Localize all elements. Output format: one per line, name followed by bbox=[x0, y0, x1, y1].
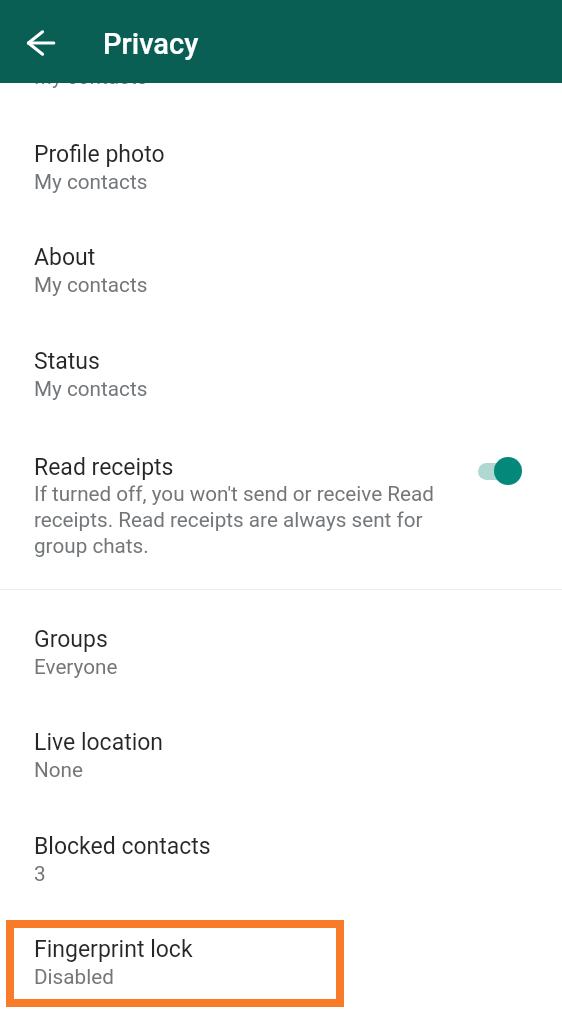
button[interactable]: Status bbox=[0, 348, 562, 410]
button[interactable]: Fingerprint lock bbox=[0, 936, 562, 998]
staticText: Status bbox=[34, 348, 100, 375]
button[interactable]: Read receipts toggle, on bbox=[470, 452, 530, 492]
staticText: Groups bbox=[34, 626, 108, 653]
staticText: Privacy bbox=[103, 27, 199, 61]
staticText: Profile photo bbox=[34, 141, 165, 168]
staticText: If turned off, you won't send or receive… bbox=[34, 482, 458, 558]
button[interactable]: Profile photo bbox=[0, 141, 562, 203]
staticText: Read receipts bbox=[34, 454, 174, 481]
staticText: 3 bbox=[34, 862, 46, 886]
staticText: My contacts bbox=[34, 170, 148, 194]
button[interactable]: Groups bbox=[0, 626, 562, 688]
staticText: Everyone bbox=[34, 655, 118, 679]
staticText: My contacts bbox=[34, 65, 148, 89]
button[interactable]: About bbox=[0, 244, 562, 306]
button[interactable]: Blocked contacts bbox=[0, 833, 562, 895]
staticText: My contacts bbox=[34, 273, 148, 297]
staticText: Disabled bbox=[34, 965, 114, 989]
staticText: Live location bbox=[34, 729, 164, 756]
staticText: Fingerprint lock bbox=[34, 936, 193, 963]
button[interactable]: Live location bbox=[0, 729, 562, 791]
staticText: About bbox=[34, 244, 96, 271]
staticText: My contacts bbox=[34, 377, 148, 401]
staticText: Blocked contacts bbox=[34, 833, 211, 860]
button[interactable]: Read receipts bbox=[0, 454, 562, 569]
button[interactable]: Back bbox=[17, 19, 65, 67]
staticText: None bbox=[34, 758, 83, 782]
